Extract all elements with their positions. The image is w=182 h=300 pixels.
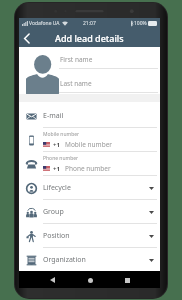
staticText: Mobile number bbox=[43, 131, 80, 138]
staticText: Lifecycle bbox=[43, 183, 71, 193]
button[interactable]: Recent apps bbox=[120, 273, 134, 287]
staticText: Mobile number bbox=[65, 140, 112, 149]
button[interactable]: Group bbox=[19, 200, 160, 224]
staticText: Organization bbox=[43, 255, 86, 265]
button[interactable]: Back bbox=[19, 30, 35, 46]
button[interactable]: E-mail bbox=[19, 104, 160, 128]
staticText: Phone number bbox=[43, 155, 79, 162]
staticText: 21:07 bbox=[83, 20, 96, 27]
staticText: E-mail bbox=[43, 111, 64, 121]
button[interactable]: Organization bbox=[19, 248, 160, 272]
staticText: Group bbox=[43, 207, 64, 217]
staticText: 100% bbox=[134, 20, 147, 27]
button[interactable]: Position bbox=[19, 224, 160, 248]
staticText: First name bbox=[60, 55, 93, 64]
button[interactable]: Back bbox=[45, 273, 59, 287]
button[interactable]: Mobile number bbox=[19, 128, 160, 152]
staticText: Position bbox=[43, 231, 70, 241]
staticText: Last name bbox=[60, 79, 92, 88]
staticText: +1 bbox=[53, 141, 60, 149]
button[interactable]: Phone number bbox=[19, 152, 160, 176]
staticText: Add lead details bbox=[55, 32, 124, 44]
staticText: +1 bbox=[53, 165, 60, 173]
staticText: Phone number bbox=[65, 164, 111, 173]
button[interactable]: Lifecycle bbox=[19, 176, 160, 200]
button[interactable]: Home bbox=[83, 273, 97, 287]
staticText: Vodafone UA bbox=[29, 20, 60, 27]
